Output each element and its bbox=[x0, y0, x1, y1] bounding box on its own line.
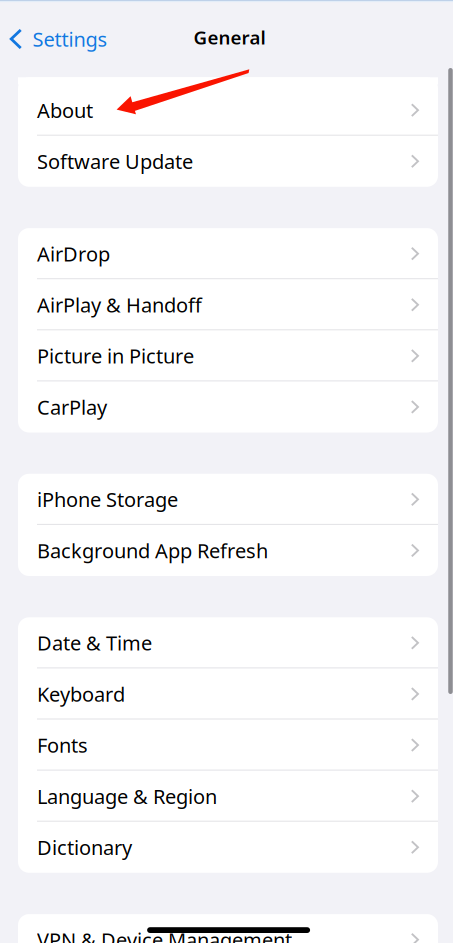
button[interactable]: Settings bbox=[0, 17, 120, 61]
staticText: About bbox=[37, 97, 93, 123]
button[interactable]: Picture in Picture bbox=[18, 330, 438, 381]
staticText: General bbox=[193, 25, 265, 50]
button[interactable]: Background App Refresh bbox=[18, 525, 438, 576]
staticText: Fonts bbox=[37, 732, 88, 758]
staticText: Language & Region bbox=[37, 783, 217, 809]
staticText: Software Update bbox=[37, 148, 193, 175]
staticText: Date & Time bbox=[37, 630, 152, 656]
staticText: iPhone Storage bbox=[37, 486, 178, 513]
staticText: VPN & Device Management bbox=[37, 926, 292, 943]
staticText: Settings bbox=[32, 26, 107, 52]
button[interactable]: AirPlay & Handoff bbox=[18, 279, 438, 330]
button[interactable]: Language & Region bbox=[18, 771, 438, 822]
staticText: Background App Refresh bbox=[37, 537, 268, 564]
button[interactable]: CarPlay bbox=[18, 381, 438, 432]
button[interactable]: Keyboard bbox=[18, 668, 438, 719]
staticText: CarPlay bbox=[37, 394, 107, 420]
staticText: Dictionary bbox=[37, 834, 132, 861]
button[interactable]: VPN & Device Management bbox=[18, 914, 438, 943]
button[interactable]: Software Update bbox=[18, 136, 438, 187]
staticText: AirDrop bbox=[37, 240, 110, 267]
button[interactable]: Fonts bbox=[18, 719, 438, 771]
button[interactable]: iPhone Storage bbox=[18, 474, 438, 525]
button[interactable]: AirDrop bbox=[18, 228, 438, 279]
button[interactable]: About bbox=[18, 85, 438, 136]
staticText: AirPlay & Handoff bbox=[37, 291, 202, 318]
button[interactable]: Date & Time bbox=[18, 617, 438, 668]
staticText: Keyboard bbox=[37, 681, 125, 707]
button[interactable]: Dictionary bbox=[18, 822, 438, 873]
staticText: Picture in Picture bbox=[37, 343, 194, 369]
